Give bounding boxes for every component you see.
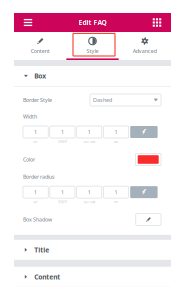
- staticText: 1: [61, 128, 64, 136]
- staticText: TOP: [33, 140, 38, 144]
- staticText: LEFT: [114, 140, 118, 144]
- staticText: LEFT: [114, 200, 118, 204]
- button[interactable]: Title: [14, 240, 171, 260]
- button[interactable]: Dashed: [90, 94, 161, 106]
- staticText: 1: [88, 189, 91, 196]
- staticText: 1: [114, 189, 117, 196]
- button[interactable]: Widget library: [146, 13, 168, 32]
- button[interactable]: Menu: [17, 13, 39, 32]
- staticText: TOP: [33, 200, 38, 204]
- staticText: BOTTOM: [84, 200, 95, 204]
- staticText: RIGHT: [58, 200, 66, 204]
- staticText: Border radius: [23, 173, 55, 180]
- staticText: Style: [86, 47, 98, 55]
- staticText: Box: [34, 72, 46, 80]
- button[interactable]: Box: [14, 66, 171, 86]
- button[interactable]: Edit box shadow: [136, 213, 161, 225]
- staticText: RIGHT: [58, 140, 66, 144]
- staticText: Dashed: [93, 96, 112, 104]
- staticText: 1: [114, 128, 117, 136]
- staticText: 1: [88, 128, 91, 136]
- staticText: Width: [23, 113, 37, 120]
- button[interactable]: Link values together: [130, 126, 158, 138]
- staticText: Content: [34, 272, 60, 281]
- staticText: Edit FAQ: [78, 18, 106, 27]
- staticText: Advanced: [133, 47, 157, 55]
- staticText: Border Style: [23, 96, 52, 104]
- button[interactable]: Content: [14, 267, 171, 287]
- staticText: Title: [34, 245, 49, 254]
- staticText: Color: [23, 156, 35, 163]
- staticText: Box Shadow: [23, 216, 52, 223]
- button[interactable]: Advanced: [119, 32, 171, 60]
- button[interactable]: Content: [14, 32, 66, 60]
- staticText: 1: [34, 189, 37, 196]
- button[interactable]: Style: [66, 32, 119, 60]
- staticText: Content: [31, 47, 50, 55]
- staticText: 1: [61, 189, 64, 196]
- staticText: 1: [34, 128, 37, 136]
- staticText: BOTTOM: [84, 140, 95, 144]
- button[interactable]: Link values together: [130, 186, 158, 198]
- button[interactable]: Border colour: [135, 153, 161, 166]
